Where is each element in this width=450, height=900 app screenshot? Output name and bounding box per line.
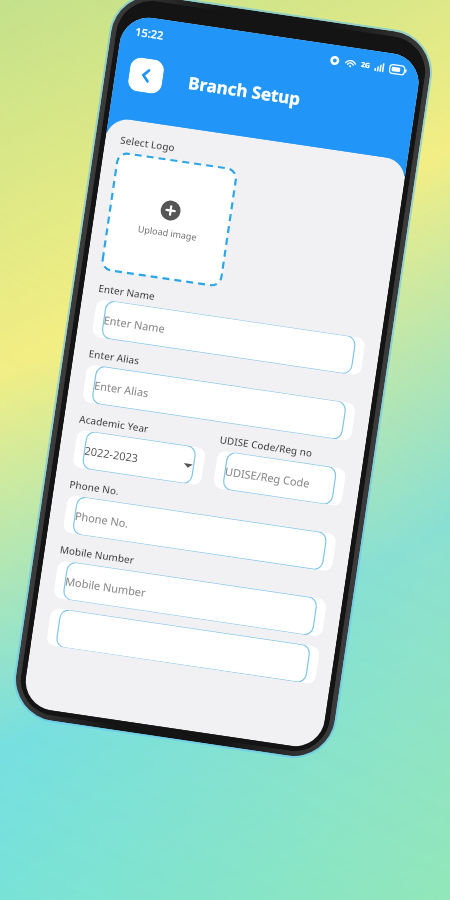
staticText: 15:22 [134,24,165,43]
staticText: Enter Name [97,281,156,303]
staticText: Academic Year [78,411,149,436]
button[interactable]: Mobile Number [53,560,327,637]
staticText: Enter Name [103,312,166,336]
staticText: Select Logo [119,133,176,154]
staticText: Branch Setup [187,71,302,110]
staticText: Phone No. [74,508,130,531]
staticText: Upload image [137,222,198,243]
staticText: UDISE/Reg Code [224,463,311,491]
button[interactable]: Phone No. [62,495,337,572]
staticText: 2G [360,60,372,71]
button[interactable]: Enter Alias [82,364,356,441]
button[interactable]: UDISE/Reg Code [213,450,347,507]
button[interactable]: Back [127,56,165,95]
staticText: UDISE Code/Reg no [219,432,314,460]
staticText: Enter Alias [93,377,150,400]
button[interactable] [46,607,320,685]
button[interactable]: 2022-2023 [72,429,206,486]
staticText: 2022-2023 [84,443,139,465]
staticText: Phone No. [69,477,120,498]
button[interactable]: Upload image [101,152,237,287]
staticText: Mobile Number [59,542,135,567]
staticText: Mobile Number [64,573,148,600]
staticText: Enter Alias [88,346,140,367]
button[interactable]: Enter Name [91,299,366,376]
